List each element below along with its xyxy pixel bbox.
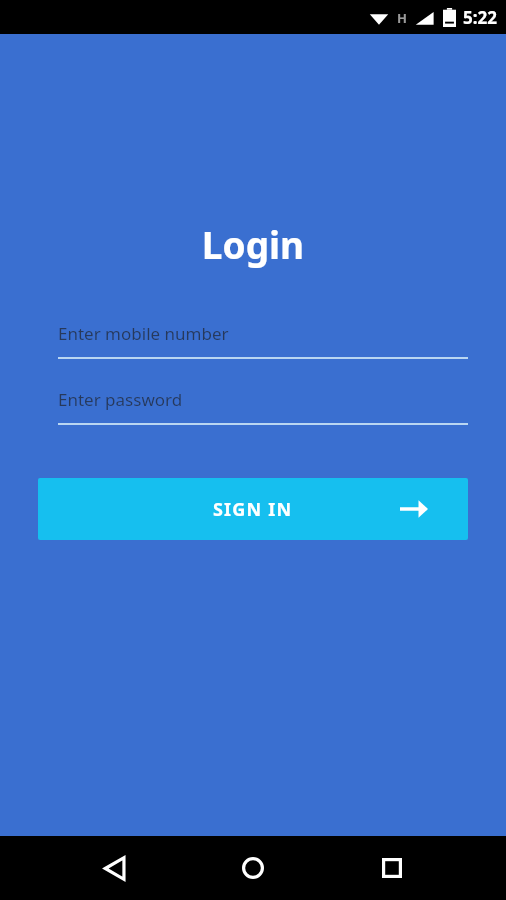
button[interactable]: Enter password [58, 388, 468, 425]
button[interactable]: Enter mobile number [58, 322, 468, 359]
staticText: SIGN IN [213, 497, 293, 522]
staticText: H [397, 9, 407, 27]
staticText: Login [0, 219, 506, 269]
button[interactable]: Home [227, 842, 279, 894]
staticText: Enter mobile number [58, 322, 229, 345]
staticText: Enter password [58, 388, 183, 411]
button[interactable]: Back [88, 842, 140, 894]
button[interactable]: Recents [366, 842, 418, 894]
staticText: 5:22 [463, 6, 497, 29]
button[interactable]: SIGN IN [38, 478, 468, 540]
